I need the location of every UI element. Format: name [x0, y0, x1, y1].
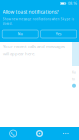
button[interactable]: Skype: [26, 127, 53, 140]
staticText: Yes: [56, 32, 62, 36]
staticText: will appear here.: [3, 51, 35, 57]
staticText: No: [18, 32, 23, 36]
staticText: closed.: [2, 21, 12, 26]
staticText: Ka: [72, 70, 76, 74]
button[interactable]: Calls: [0, 127, 26, 140]
button[interactable]: No: [2, 30, 38, 38]
staticText: Allow toast notifications?: [2, 8, 58, 15]
button[interactable]: More: [53, 127, 79, 140]
staticText: 08:16: [68, 1, 77, 6]
staticText: Show new message notifications when Skyp…: [2, 17, 73, 21]
staticText: Your recent calls and messages: [3, 43, 65, 49]
button[interactable]: Yes: [41, 30, 77, 38]
staticText: to: [72, 77, 75, 81]
